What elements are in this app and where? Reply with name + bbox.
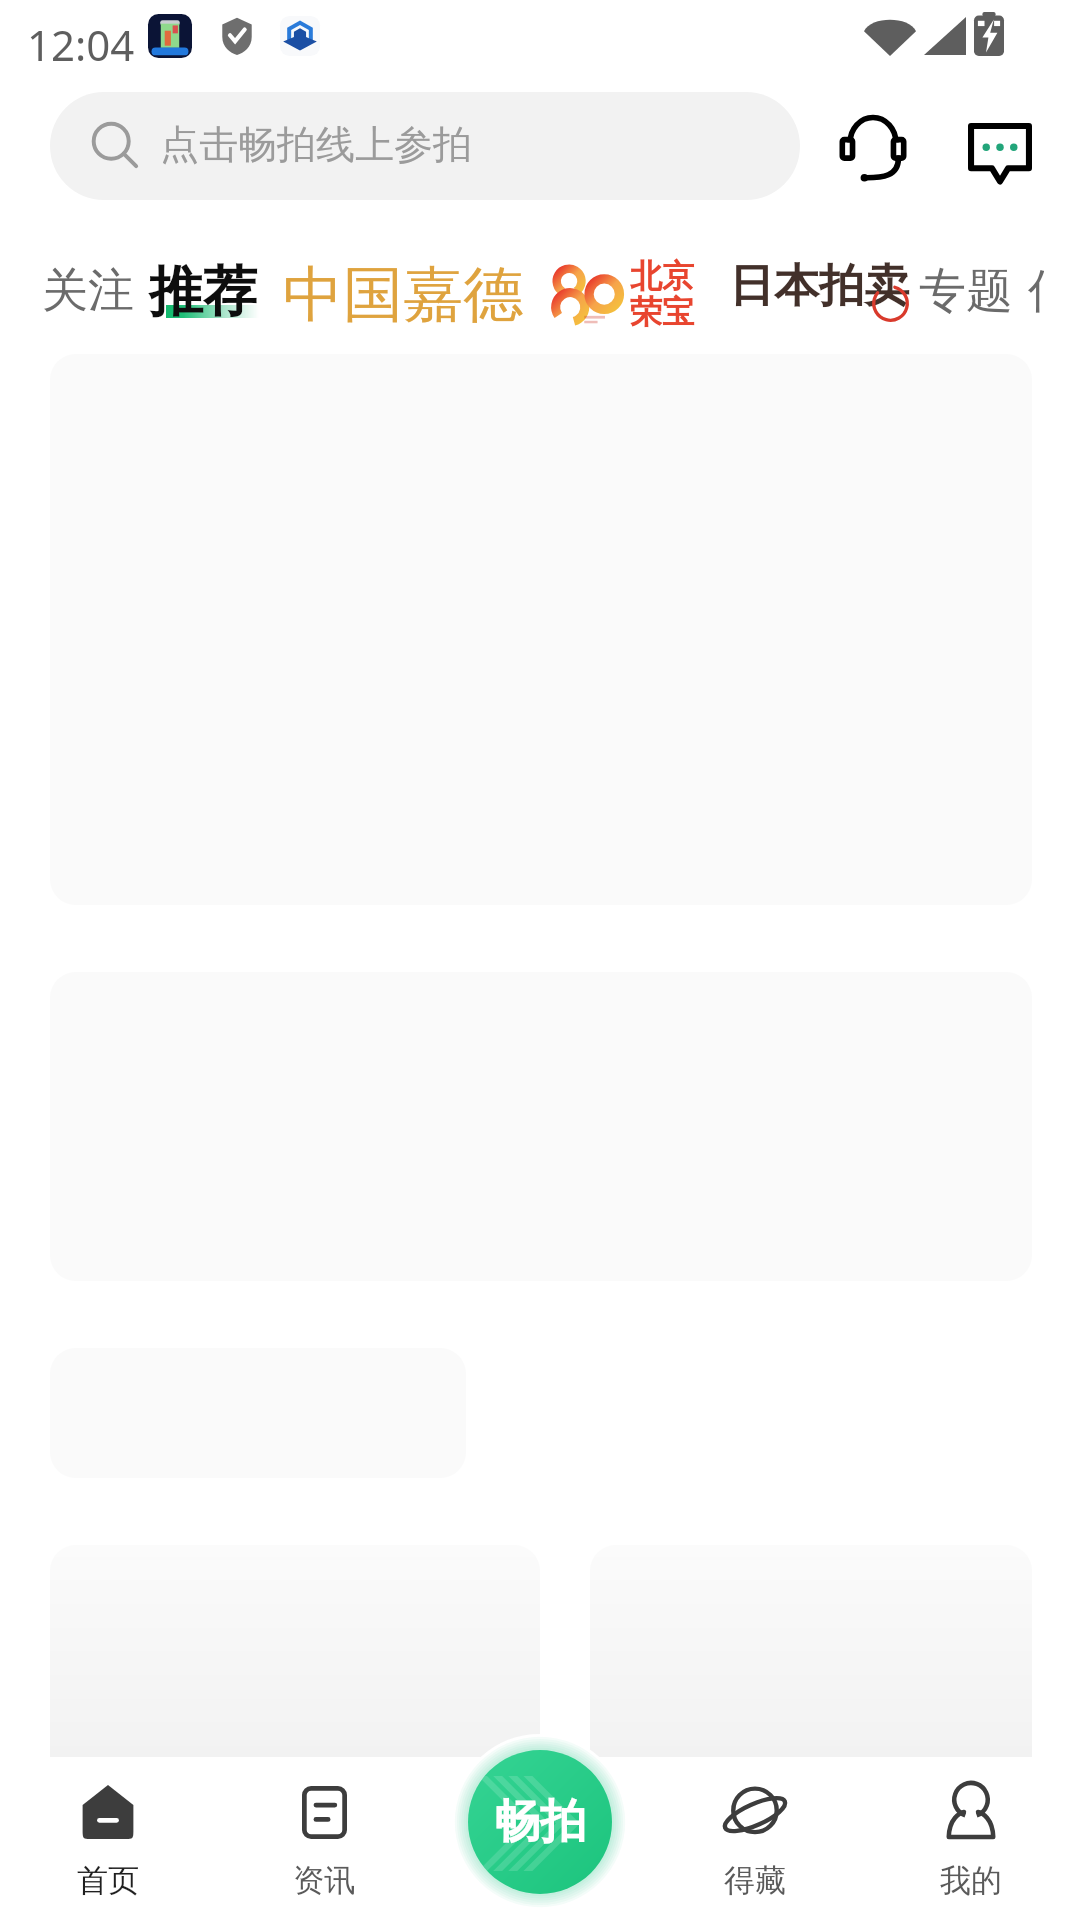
staticText: 资讯: [293, 1861, 355, 1900]
staticText: 信: [1028, 262, 1044, 321]
staticText: 点击畅拍线上参拍: [160, 120, 472, 169]
button[interactable]: 点击畅拍线上参拍: [50, 92, 800, 200]
button[interactable]: 中国嘉德: [283, 257, 523, 333]
staticText: 得藏: [724, 1861, 786, 1900]
staticText: 我的: [940, 1861, 1002, 1900]
button[interactable]: 畅拍: [468, 1750, 612, 1894]
staticText: 首页: [77, 1861, 139, 1900]
staticText: 荣宝: [630, 292, 694, 332]
button[interactable]: 我的: [891, 1767, 1051, 1912]
button[interactable]: 首页: [28, 1767, 188, 1912]
button[interactable]: 专题: [919, 262, 1013, 321]
button[interactable]: 客服: [828, 104, 918, 196]
button[interactable]: 北京荣宝: [548, 256, 694, 336]
button[interactable]: 得藏: [675, 1767, 835, 1912]
button[interactable]: 推荐: [149, 258, 257, 326]
button[interactable]: 消息: [954, 108, 1046, 198]
staticText: 畅拍: [494, 1793, 586, 1851]
button[interactable]: 日本拍卖: [729, 258, 909, 315]
staticText: 12:04: [27, 16, 135, 73]
staticText: 北京: [630, 256, 694, 296]
button[interactable]: 资讯: [244, 1767, 404, 1912]
button[interactable]: 关注: [42, 262, 134, 320]
